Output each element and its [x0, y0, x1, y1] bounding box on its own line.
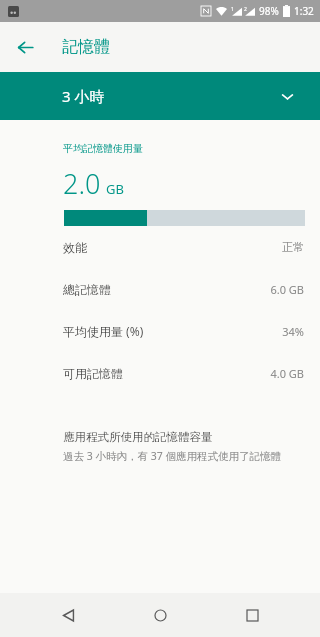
- staticText: 2.0: [63, 165, 101, 202]
- button[interactable]: Back: [8, 30, 42, 64]
- staticText: 4.0 GB: [270, 366, 304, 381]
- button[interactable]: 3 小時: [0, 72, 320, 120]
- staticText: GB: [106, 180, 124, 198]
- staticText: 1: [231, 6, 234, 13]
- staticText: 1:32: [294, 4, 314, 18]
- button[interactable]: Home: [144, 599, 176, 631]
- staticText: 總記憶體: [63, 282, 111, 297]
- staticText: 平均使用量 (%): [63, 323, 144, 339]
- staticText: 2: [244, 6, 247, 13]
- button[interactable]: 總記憶體: [0, 268, 320, 310]
- staticText: 98%: [259, 4, 279, 18]
- button[interactable]: 可用記憶體: [0, 352, 320, 394]
- button[interactable]: Recent apps: [236, 599, 268, 631]
- staticText: 平均記憶體使用量: [63, 142, 143, 155]
- staticText: 3 小時: [62, 86, 105, 106]
- button[interactable]: 平均使用量 (%): [0, 310, 320, 352]
- staticText: 應用程式所使用的記憶體容量: [63, 430, 213, 444]
- button[interactable]: Back: [52, 599, 84, 631]
- button[interactable]: 應用程式所使用的記憶體容量: [0, 430, 320, 463]
- staticText: 效能: [63, 240, 87, 255]
- staticText: 6.0 GB: [270, 282, 304, 297]
- staticText: 正常: [282, 240, 304, 254]
- staticText: 過去 3 小時內，有 37 個應用程式使用了記憶體: [63, 449, 281, 463]
- staticText: 可用記憶體: [63, 366, 123, 381]
- staticText: 34%: [282, 324, 304, 339]
- button[interactable]: 效能: [0, 226, 320, 268]
- staticText: 記憶體: [62, 37, 110, 57]
